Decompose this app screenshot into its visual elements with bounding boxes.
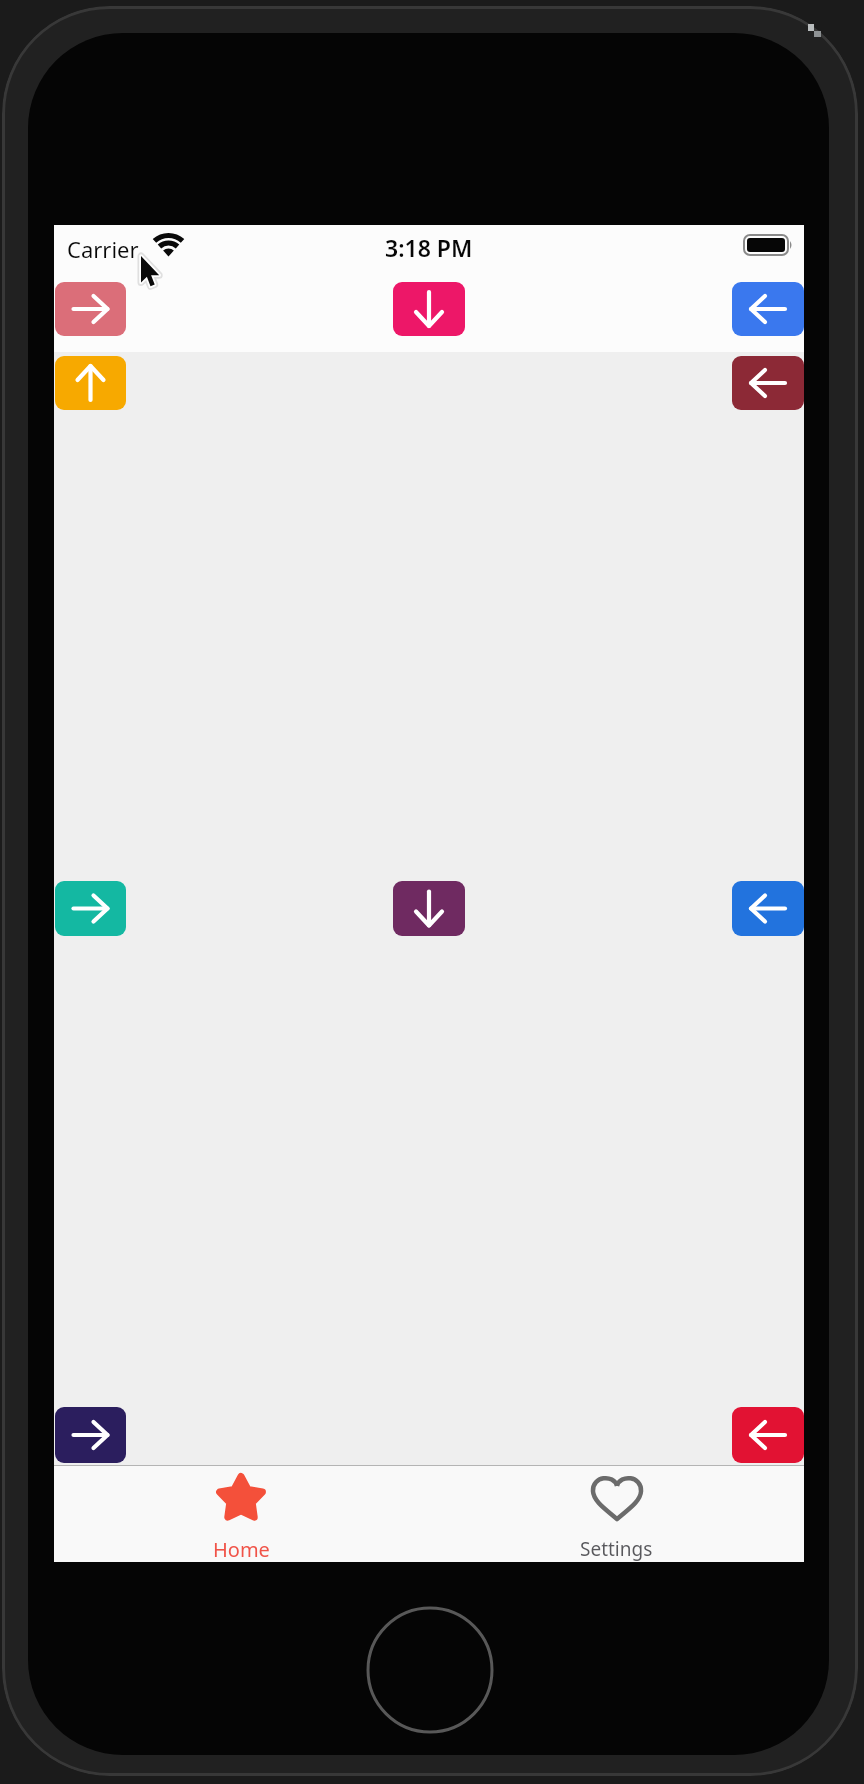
button[interactable]	[55, 282, 126, 336]
button[interactable]	[732, 356, 804, 410]
staticText: Home	[213, 1536, 270, 1563]
button[interactable]	[732, 282, 804, 336]
button[interactable]	[55, 881, 126, 936]
button[interactable]	[55, 1407, 126, 1463]
staticText: Carrier	[67, 234, 139, 264]
button[interactable]	[732, 1407, 804, 1463]
button[interactable]	[393, 282, 465, 336]
button[interactable]: Settings	[429, 1466, 804, 1562]
button[interactable]: Home	[54, 1466, 429, 1562]
button[interactable]	[55, 356, 126, 410]
staticText: Settings	[580, 1536, 653, 1562]
button[interactable]	[732, 881, 804, 936]
button[interactable]	[393, 881, 465, 936]
staticText: 3:18 PM	[385, 232, 473, 263]
